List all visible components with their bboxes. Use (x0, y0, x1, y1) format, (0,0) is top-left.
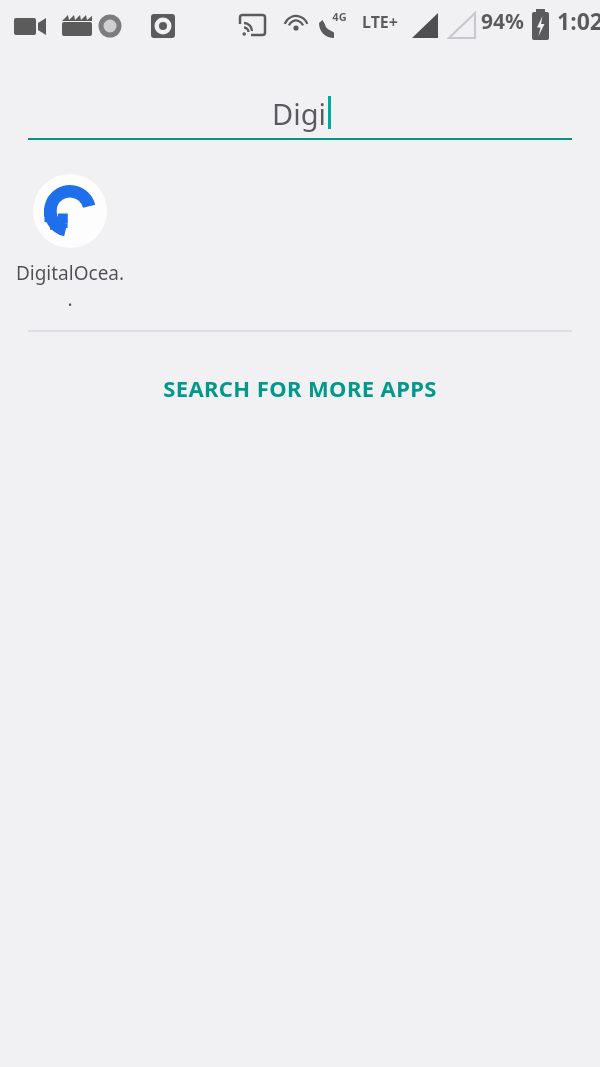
staticText: Digi (272, 94, 326, 133)
staticText: 1:02 (557, 5, 600, 36)
staticText: SEARCH FOR MORE APPS (163, 373, 437, 403)
button[interactable]: DigitalOcean app (14, 174, 126, 312)
staticText: DigitalOcea.. (14, 260, 126, 312)
staticText: LTE+ (362, 11, 398, 33)
staticText: 4G (332, 9, 347, 24)
button[interactable]: Digi (0, 0, 600, 145)
staticText: 94% (481, 7, 524, 36)
button[interactable]: SEARCH FOR MORE APPS (0, 360, 600, 416)
